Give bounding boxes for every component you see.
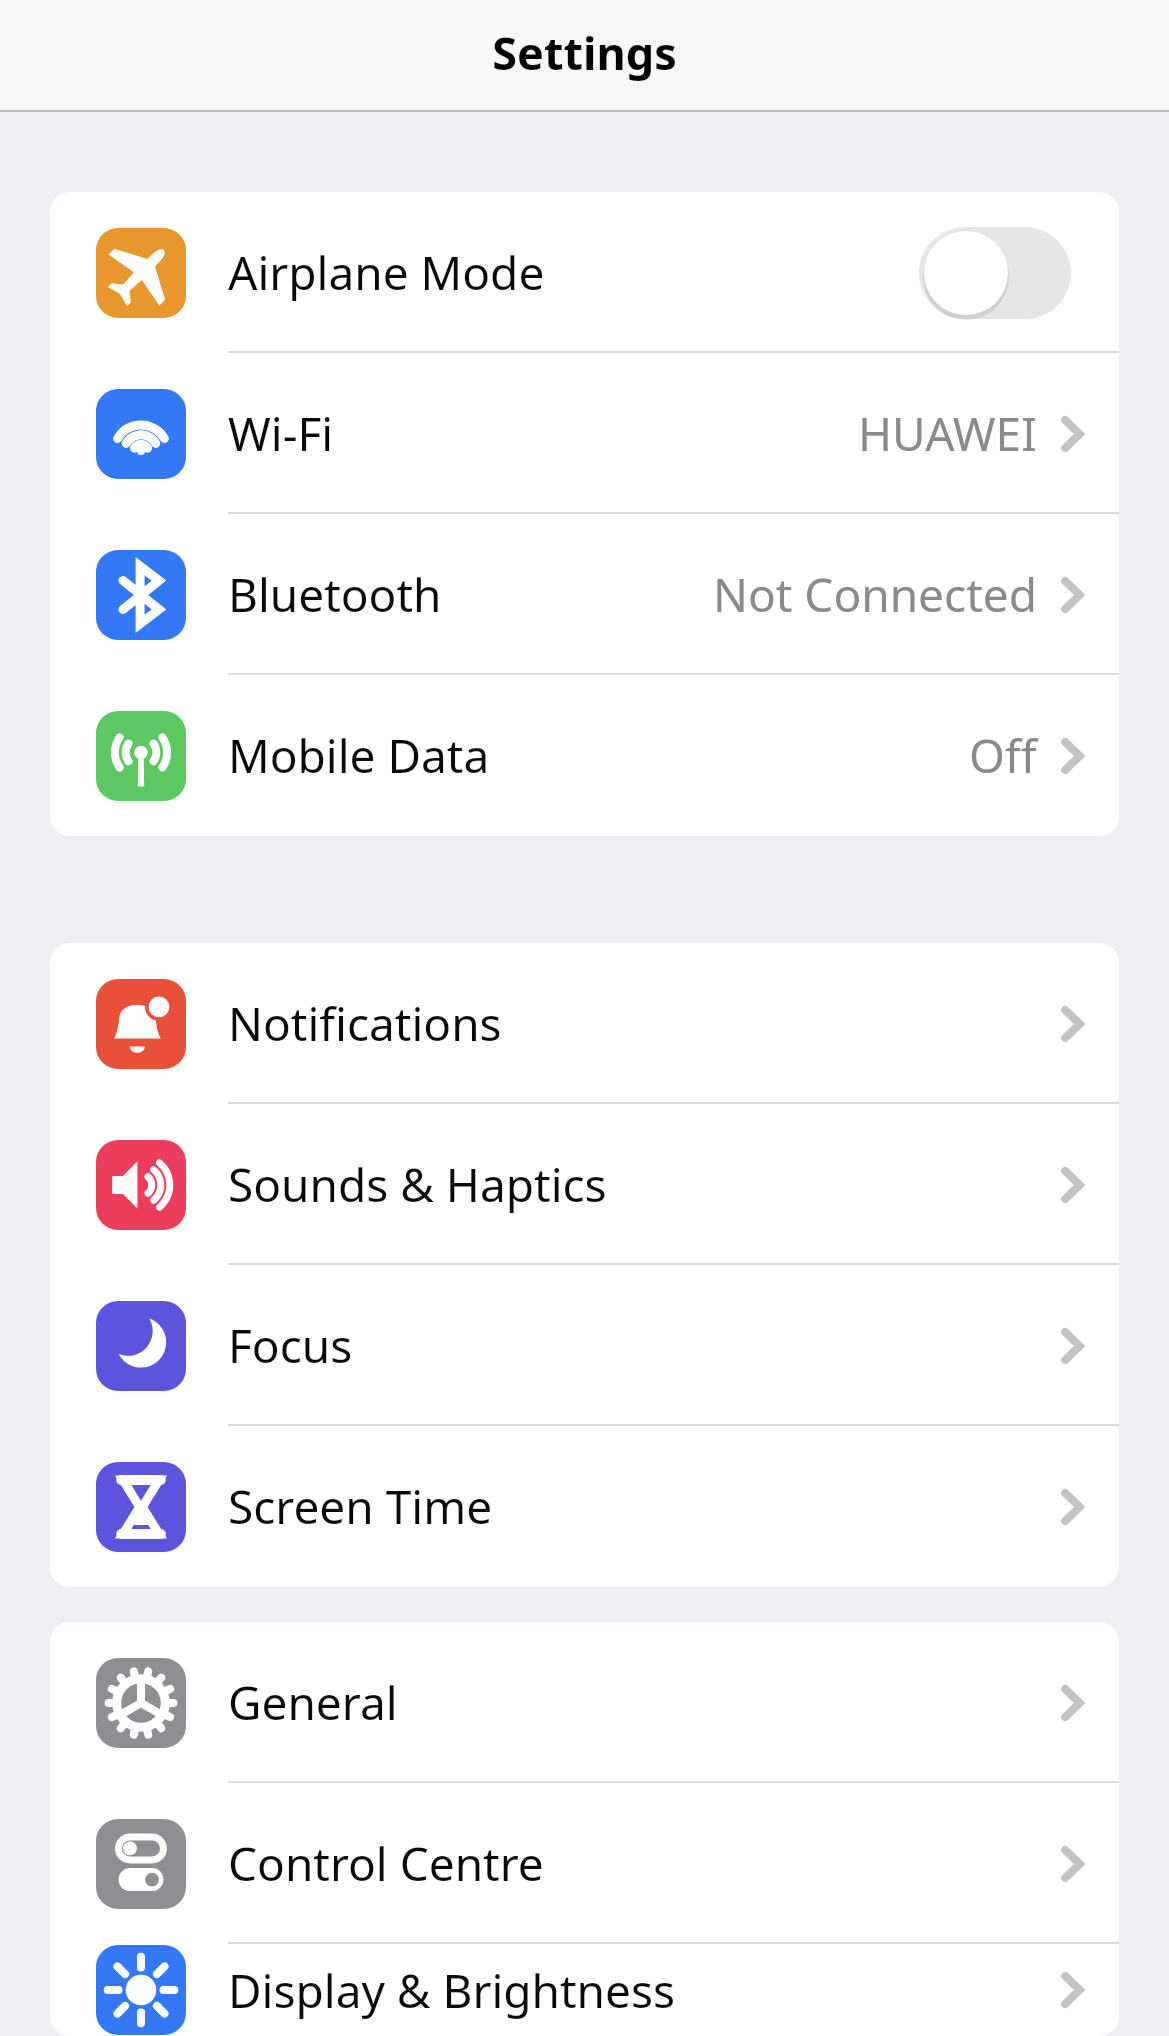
staticText: Bluetooth xyxy=(228,563,442,626)
staticText: Control Centre xyxy=(228,1832,544,1895)
staticText: Wi-Fi xyxy=(228,402,334,465)
button[interactable]: Display & Brightness xyxy=(50,1944,1119,2036)
staticText: Not Connected xyxy=(713,563,1037,626)
staticText: Mobile Data xyxy=(228,724,490,787)
button[interactable]: Notifications xyxy=(50,943,1119,1104)
staticText: Off xyxy=(969,724,1037,787)
staticText: Focus xyxy=(228,1314,353,1377)
staticText: Sounds & Haptics xyxy=(228,1153,607,1216)
button[interactable]: General xyxy=(50,1622,1119,1783)
staticText: Display & Brightness xyxy=(228,1959,676,2022)
button[interactable]: Wi-Fi xyxy=(50,353,1119,514)
button[interactable]: Control Centre xyxy=(50,1783,1119,1944)
button[interactable]: Airplane Mode xyxy=(50,192,1119,353)
staticText: Airplane Mode xyxy=(228,241,545,304)
button[interactable]: Screen Time xyxy=(50,1426,1119,1587)
button[interactable]: Mobile Data xyxy=(50,675,1119,836)
staticText: Settings xyxy=(492,22,677,83)
button[interactable]: Bluetooth xyxy=(50,514,1119,675)
staticText: Screen Time xyxy=(228,1475,493,1538)
staticText: General xyxy=(228,1671,398,1734)
staticText: Notifications xyxy=(228,992,502,1055)
button[interactable]: Focus xyxy=(50,1265,1119,1426)
staticText: HUAWEI xyxy=(858,402,1037,465)
button[interactable]: Sounds & Haptics xyxy=(50,1104,1119,1265)
